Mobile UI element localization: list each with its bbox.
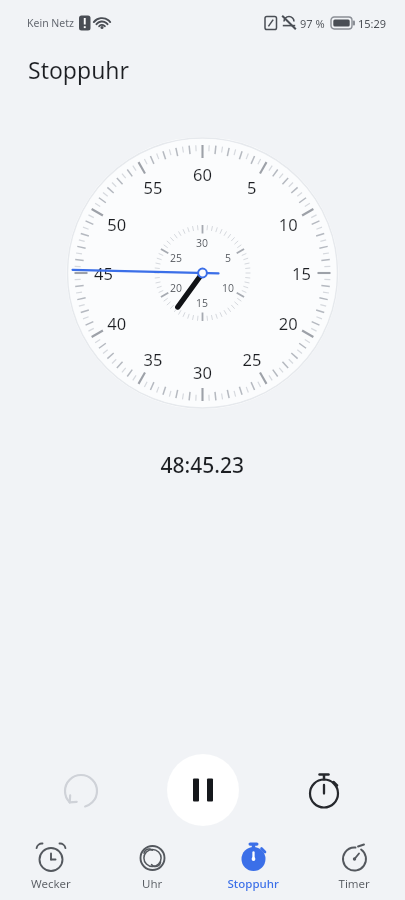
button[interactable]	[0, 834, 102, 900]
button[interactable]	[102, 834, 203, 900]
button[interactable]: Zurücksetzen	[58, 768, 104, 814]
button[interactable]	[304, 834, 405, 900]
button[interactable]: Runde	[301, 768, 347, 814]
button[interactable]: Pause	[167, 754, 239, 826]
button[interactable]	[203, 834, 304, 900]
